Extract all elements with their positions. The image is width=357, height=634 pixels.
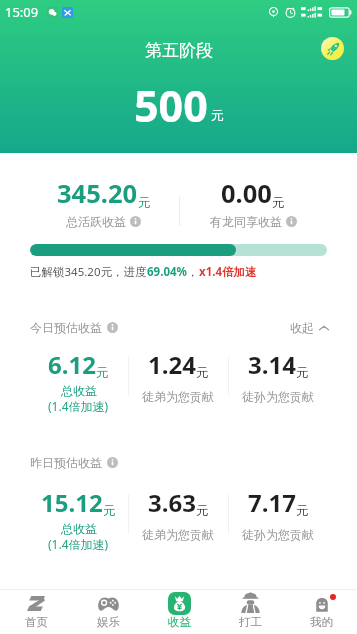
staticText: 我的 [310, 615, 333, 629]
staticText: 收起 [290, 320, 314, 335]
staticText: 总活跃收益 [66, 214, 126, 229]
staticText: 昨日预估收益 [30, 455, 102, 470]
staticText: 6.12 [48, 348, 96, 381]
button[interactable]: Rocket boost [321, 37, 344, 60]
staticText: 打工 [239, 615, 262, 629]
staticText: 1.24 [148, 348, 196, 381]
staticText: 345.20 [57, 176, 138, 211]
staticText: (1.4倍加速) [48, 398, 109, 414]
button[interactable]: 娱乐 [72, 590, 144, 634]
staticText: 收益 [168, 615, 191, 629]
staticText: 元 [296, 503, 309, 519]
staticText: 3.63 [148, 486, 196, 519]
staticText: 0.00 [221, 176, 272, 211]
staticText: 已解锁345.20元，进度 [30, 264, 147, 280]
staticText: 元 [211, 107, 224, 123]
staticText: 元 [96, 365, 109, 381]
staticText: 元 [196, 365, 209, 381]
staticText: 徒孙为您贡献 [242, 527, 314, 542]
staticText: 元 [196, 503, 209, 519]
button[interactable]: 我的 [286, 590, 357, 634]
staticText: 元 [296, 365, 309, 381]
staticText: 徒弟为您贡献 [142, 527, 214, 542]
button[interactable]: 收益 [144, 590, 215, 634]
staticText: 15:09 [5, 3, 39, 21]
staticText: 7.17 [248, 486, 296, 519]
staticText: 元 [272, 195, 285, 211]
staticText: x1.4倍加速 [199, 264, 257, 280]
staticText: 首页 [25, 615, 48, 629]
staticText: 总收益 [61, 521, 97, 536]
staticText: ， [187, 265, 199, 279]
staticText: 有龙同享收益 [210, 214, 282, 229]
staticText: 元 [138, 195, 151, 211]
button[interactable]: 打工 [215, 590, 286, 634]
staticText: 3.14 [248, 348, 296, 381]
staticText: 总收益 [61, 383, 97, 398]
button[interactable]: 首页 [0, 590, 72, 634]
button[interactable]: 收起 [290, 320, 329, 335]
staticText: 第五阶段 [145, 40, 213, 61]
staticText: 娱乐 [97, 615, 120, 629]
staticText: 今日预估收益 [30, 320, 102, 335]
staticText: 元 [103, 503, 116, 519]
staticText: (1.4倍加速) [48, 536, 109, 552]
staticText: 500 [134, 76, 208, 135]
staticText: 15.12 [41, 486, 103, 519]
staticText: 徒孙为您贡献 [242, 389, 314, 404]
staticText: 69.04% [147, 264, 187, 280]
staticText: 徒弟为您贡献 [142, 389, 214, 404]
